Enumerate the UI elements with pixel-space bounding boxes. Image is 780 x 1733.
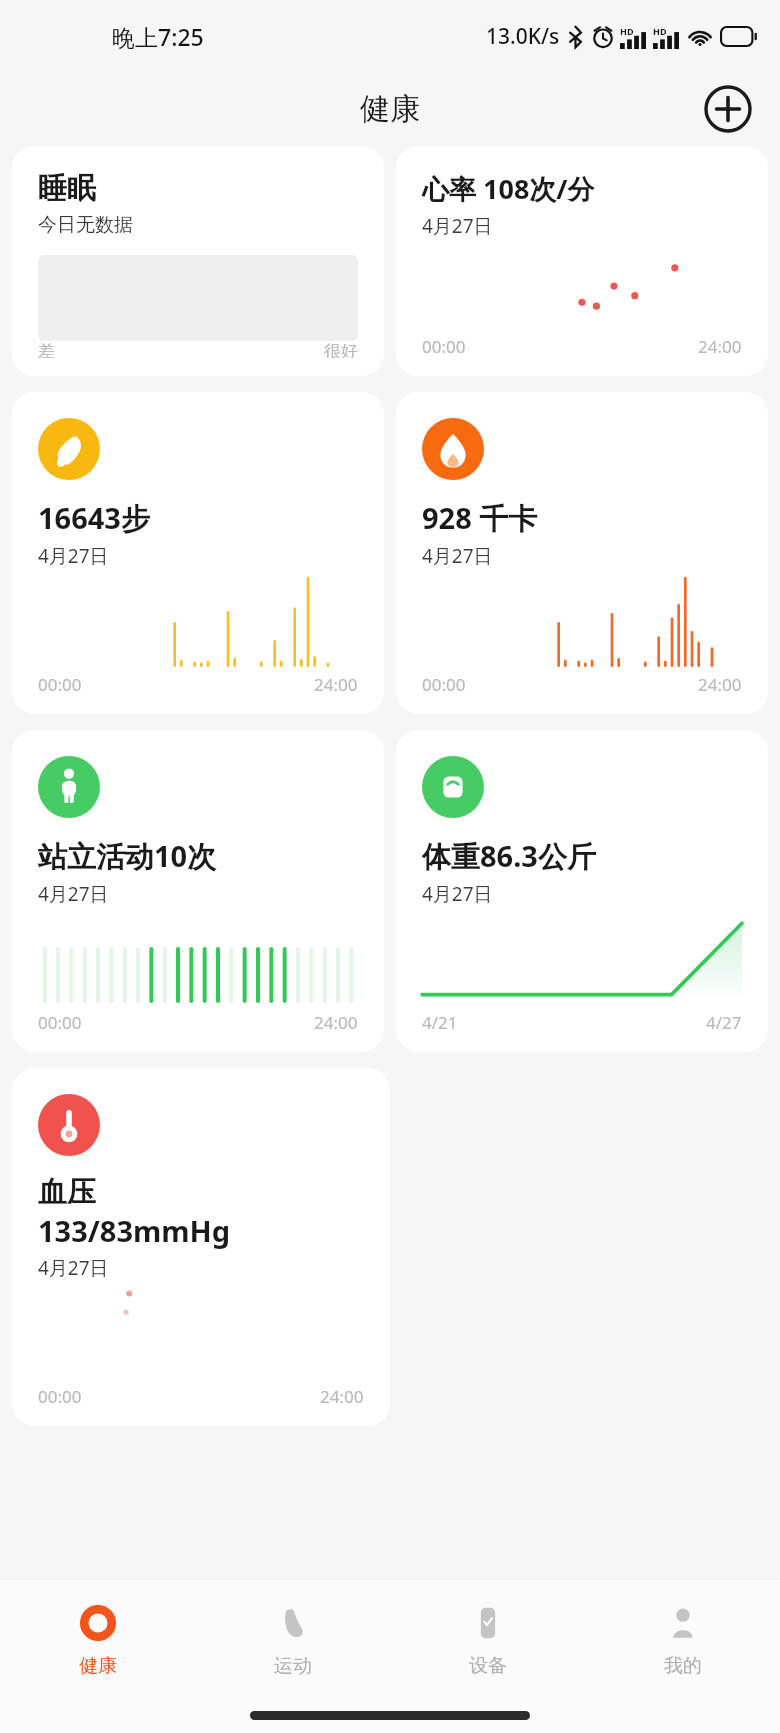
staticText: 00:00	[38, 673, 82, 696]
button[interactable]: Add	[704, 85, 752, 133]
button[interactable]: 体重86.3公斤	[396, 730, 768, 1052]
button[interactable]: 血压	[12, 1068, 390, 1426]
staticText: 站立活动10次	[38, 836, 217, 876]
staticText: 4月27日	[422, 881, 493, 907]
button[interactable]: 设备	[390, 1580, 585, 1698]
staticText: 4月27日	[422, 213, 493, 239]
staticText: 血压	[38, 1174, 96, 1211]
staticText: 很好	[324, 341, 358, 358]
staticText: 今日无数据	[38, 213, 133, 237]
staticText: 13.0K/s	[486, 22, 560, 51]
staticText: 24:00	[698, 335, 742, 358]
button[interactable]: 16643步	[12, 392, 384, 714]
staticText: 设备	[469, 1654, 507, 1678]
button[interactable]: 健康	[0, 1580, 195, 1698]
staticText: 体重86.3公斤	[422, 836, 596, 876]
staticText: 4/27	[706, 1011, 742, 1034]
staticText: HD	[620, 25, 634, 37]
button[interactable]: 心率 108次/分	[396, 146, 768, 376]
staticText: 133/83mmHg	[38, 1211, 231, 1250]
staticText: 24:00	[314, 1011, 358, 1034]
staticText: 4月27日	[38, 543, 109, 569]
button[interactable]: 我的	[585, 1580, 780, 1698]
button[interactable]: 站立活动10次	[12, 730, 384, 1052]
staticText: 我的	[664, 1654, 702, 1678]
staticText: 928 千卡	[422, 498, 538, 538]
staticText: 4/21	[422, 1011, 458, 1034]
staticText: 00:00	[38, 1011, 82, 1034]
staticText: 健康	[360, 90, 420, 128]
staticText: 差	[38, 341, 55, 358]
staticText: 4月27日	[38, 1255, 109, 1281]
staticText: 24:00	[320, 1385, 364, 1408]
staticText: 24:00	[314, 673, 358, 696]
staticText: 心率 108次/分	[422, 170, 595, 207]
staticText: 00:00	[422, 673, 466, 696]
button[interactable]: 928 千卡	[396, 392, 768, 714]
staticText: 4月27日	[422, 543, 493, 569]
staticText: 运动	[274, 1654, 312, 1678]
button[interactable]: 睡眠	[12, 146, 384, 376]
staticText: 4月27日	[38, 881, 109, 907]
staticText: 16643步	[38, 498, 150, 538]
staticText: 00:00	[422, 335, 466, 358]
staticText: 健康	[79, 1654, 117, 1678]
staticText: 00:00	[38, 1385, 82, 1408]
staticText: HD	[653, 25, 667, 37]
staticText: 24:00	[698, 673, 742, 696]
staticText: 晚上7:25	[112, 21, 204, 52]
button[interactable]: 运动	[195, 1580, 390, 1698]
staticText: 睡眠	[38, 170, 96, 207]
